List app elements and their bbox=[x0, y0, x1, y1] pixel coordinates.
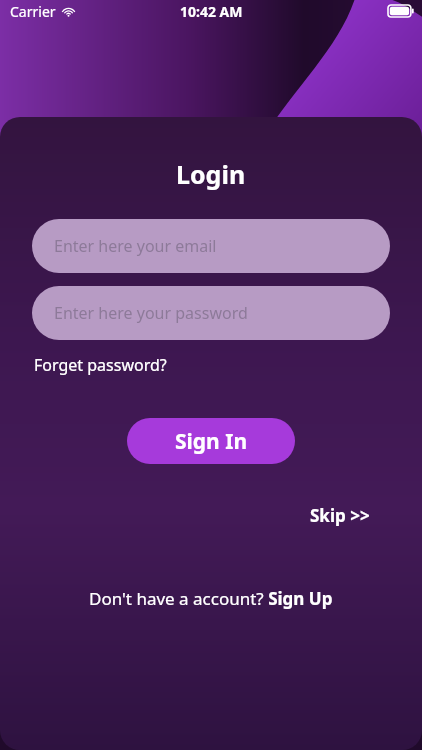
staticText: Forget password? bbox=[34, 354, 167, 376]
button[interactable]: Forget password? bbox=[34, 354, 388, 376]
button[interactable]: Skip >> bbox=[310, 504, 370, 527]
staticText: Sign In bbox=[175, 427, 248, 456]
button[interactable]: Sign In bbox=[127, 418, 295, 464]
staticText: Enter here your password bbox=[54, 302, 248, 324]
button[interactable]: Enter here your email bbox=[32, 219, 390, 273]
button[interactable]: Don't have a account? Sign Up bbox=[89, 587, 333, 610]
staticText: 10:42 AM bbox=[180, 2, 243, 21]
staticText: Skip >> bbox=[310, 504, 370, 527]
staticText: Don't have a account? Sign Up bbox=[89, 587, 333, 610]
staticText: Enter here your email bbox=[54, 235, 217, 257]
button[interactable]: Enter here your password bbox=[32, 286, 390, 340]
staticText: Login bbox=[176, 157, 246, 191]
staticText: Carrier bbox=[10, 2, 56, 21]
